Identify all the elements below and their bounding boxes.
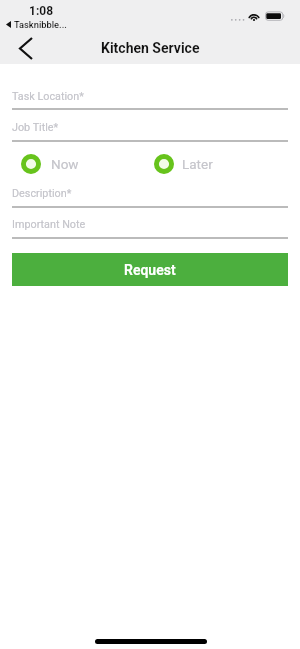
staticText: Request [124, 262, 176, 278]
staticText: Tasknibble... [14, 19, 67, 30]
button[interactable]: Job Title* [12, 115, 288, 142]
staticText: Kitchen Service [101, 40, 200, 56]
button[interactable]: Important Note [12, 212, 288, 239]
button[interactable]: Request [12, 253, 288, 286]
staticText: 1:08 [29, 4, 54, 18]
staticText: Important Note [12, 218, 86, 231]
staticText: Now [51, 156, 79, 172]
button[interactable]: Back [9, 31, 43, 65]
button[interactable]: Description* [12, 181, 288, 208]
button[interactable]: Task Location* [12, 84, 288, 110]
button[interactable]: Now [21, 154, 79, 174]
staticText: Description* [12, 187, 72, 200]
staticText: Job Title* [12, 121, 59, 134]
button[interactable]: Later [154, 154, 213, 174]
staticText: Later [182, 156, 213, 172]
staticText: Task Location* [12, 90, 84, 103]
